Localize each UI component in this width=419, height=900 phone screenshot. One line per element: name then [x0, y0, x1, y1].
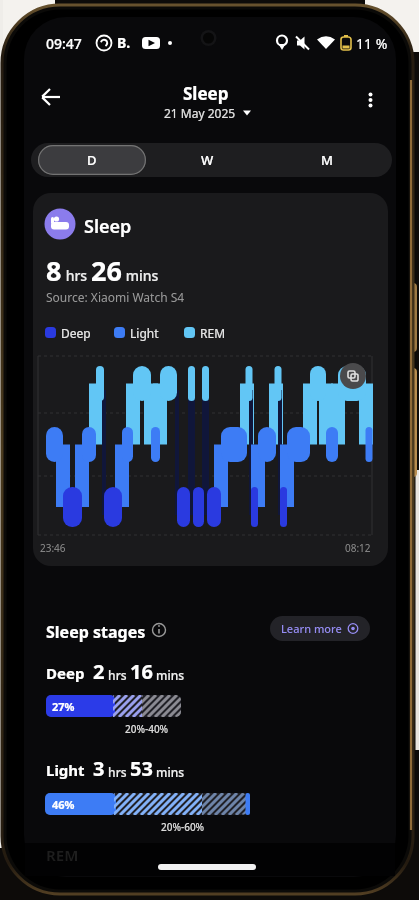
button[interactable]	[32, 79, 70, 117]
staticText: Sleep	[183, 82, 229, 105]
staticText: 23:46	[40, 541, 66, 555]
staticText: Deep	[61, 325, 91, 341]
staticText: hrs	[105, 667, 130, 683]
staticText: W	[201, 151, 214, 169]
staticText: 16	[130, 658, 153, 685]
button[interactable]: W	[152, 145, 262, 175]
staticText: 26	[91, 252, 122, 289]
staticText: mins	[153, 764, 185, 780]
button[interactable]	[148, 619, 170, 641]
staticText: Light	[130, 325, 159, 341]
staticText: Sleep	[84, 214, 132, 239]
staticText: 53	[130, 755, 153, 782]
staticText: 8	[46, 252, 62, 289]
staticText: 27%	[52, 699, 75, 714]
staticText: mins	[153, 667, 185, 683]
staticText: mins	[122, 266, 159, 285]
staticText: D	[87, 151, 97, 169]
staticText: REM	[200, 325, 226, 341]
staticText: hrs	[62, 266, 91, 285]
staticText: 21 May 2025	[164, 105, 236, 121]
button[interactable]: M	[272, 145, 382, 175]
staticText: 2	[93, 658, 105, 685]
staticText: 09:47	[46, 34, 82, 53]
staticText: hrs	[105, 764, 130, 780]
button[interactable]: D	[38, 145, 146, 175]
staticText: Light	[46, 760, 93, 780]
staticText: Deep	[46, 663, 93, 683]
staticText: Sleep stages	[46, 621, 146, 643]
staticText: B.	[117, 33, 131, 52]
staticText: 46%	[52, 797, 75, 812]
button[interactable]	[340, 363, 366, 389]
button[interactable]: 21 May 2025	[140, 103, 260, 123]
staticText: 20%-40%	[125, 722, 169, 736]
button[interactable]	[354, 83, 388, 117]
staticText: 11 %	[356, 34, 388, 53]
staticText: Source: Xiaomi Watch S4	[46, 289, 185, 305]
button[interactable]: Learn more	[270, 616, 370, 641]
staticText: 20%-60%	[161, 820, 205, 834]
staticText: M	[321, 151, 333, 169]
staticText: 3	[93, 755, 105, 782]
staticText: REM	[46, 845, 79, 865]
staticText: Learn more	[281, 621, 342, 636]
staticText: 08:12	[345, 541, 371, 555]
